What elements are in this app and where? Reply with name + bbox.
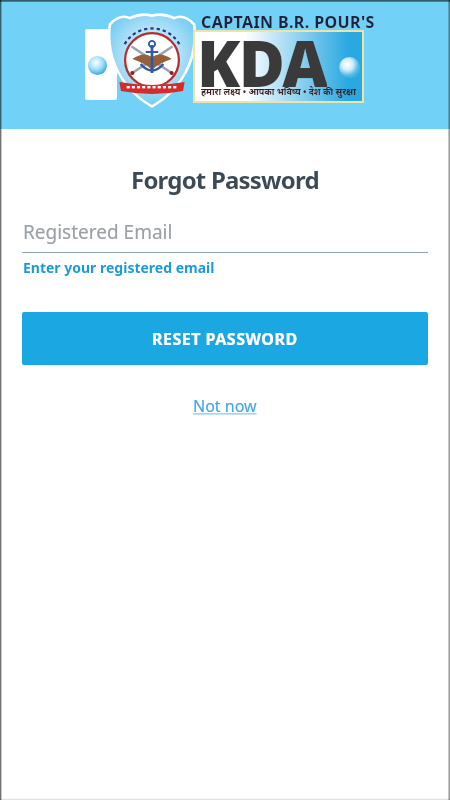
staticText: Registered Email — [23, 219, 173, 245]
staticText: Enter your registered email — [23, 258, 215, 277]
staticText: हमारा लक्ष्य • आपका भविष्य • देश की सुरक… — [201, 85, 356, 97]
button[interactable]: RESET PASSWORD — [22, 312, 428, 365]
staticText: Not now — [193, 395, 257, 417]
staticText: RESET PASSWORD — [152, 328, 298, 350]
staticText: Forgot Password — [131, 163, 319, 196]
button[interactable]: Not now — [193, 395, 257, 417]
staticText: KDA — [197, 20, 327, 89]
staticText: CAPTAIN B.R. POUR'S — [201, 11, 375, 33]
